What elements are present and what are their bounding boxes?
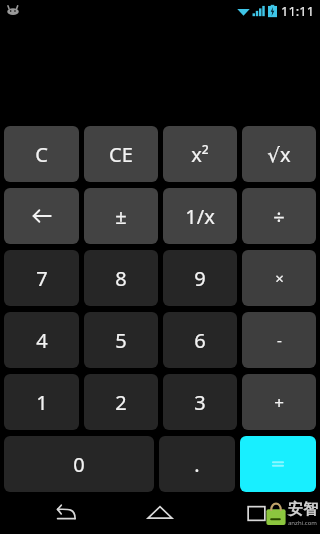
staticText: 6 — [194, 327, 206, 354]
button[interactable]: - — [242, 312, 316, 368]
button[interactable]: . — [159, 436, 235, 492]
staticText: 1 — [36, 389, 48, 416]
button[interactable]: √x — [242, 126, 316, 182]
button[interactable]: ÷ — [242, 188, 316, 244]
staticText: 9 — [194, 265, 206, 292]
staticText: 4 — [36, 327, 48, 354]
button[interactable]: 3 — [163, 374, 237, 430]
staticText: - — [277, 330, 282, 350]
staticText: 2 — [115, 389, 127, 416]
staticText: 7 — [36, 265, 48, 292]
button[interactable]: 8 — [84, 250, 158, 306]
button[interactable]: C — [4, 126, 79, 182]
staticText: 安智 — [288, 500, 318, 519]
staticText: 3 — [194, 389, 206, 416]
staticText: ÷ — [273, 203, 285, 230]
button[interactable]: ± — [84, 188, 158, 244]
button[interactable]: x² — [163, 126, 237, 182]
button[interactable]: 2 — [84, 374, 158, 430]
button[interactable]: 7 — [4, 250, 79, 306]
staticText: 11:11 — [281, 2, 315, 20]
button[interactable]: Back — [46, 495, 82, 531]
button[interactable]: Recent apps — [238, 495, 274, 531]
staticText: 0 — [73, 451, 85, 478]
staticText: anzhi.com — [288, 519, 317, 527]
staticText: CE — [109, 141, 133, 168]
staticText: 8 — [115, 265, 127, 292]
staticText: ± — [115, 203, 127, 230]
button[interactable]: × — [242, 250, 316, 306]
staticText: . — [194, 451, 200, 478]
staticText: × — [275, 268, 284, 288]
button[interactable]: 1/x — [163, 188, 237, 244]
button[interactable]: 9 — [163, 250, 237, 306]
staticText: √x — [267, 141, 291, 168]
staticText: 1/x — [185, 203, 215, 230]
button[interactable]: 1 — [4, 374, 79, 430]
button[interactable]: 4 — [4, 312, 79, 368]
staticText: 5 — [115, 327, 127, 354]
button[interactable]: 6 — [163, 312, 237, 368]
button[interactable]: 0 — [4, 436, 154, 492]
staticText: x² — [191, 141, 209, 168]
staticText: + — [274, 391, 284, 414]
button[interactable]: 5 — [84, 312, 158, 368]
button[interactable]: + — [242, 374, 316, 430]
button[interactable]: Backspace — [4, 188, 79, 244]
staticText: C — [35, 141, 48, 168]
button[interactable]: CE — [84, 126, 158, 182]
button[interactable]: Home — [142, 495, 178, 531]
button[interactable]: Equals — [240, 436, 316, 492]
